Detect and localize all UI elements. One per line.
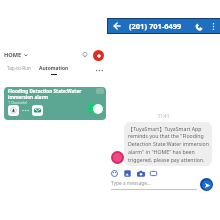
button[interactable]: Scenes bbox=[80, 50, 90, 60]
staticText: Tap-to-Run bbox=[7, 65, 31, 71]
button[interactable]: 【TuyaSmart】TuyaSmart App reminds you tha… bbox=[124, 122, 212, 166]
staticText: 1 Device(s) bbox=[8, 100, 27, 105]
button[interactable]: Type a message... bbox=[111, 180, 197, 190]
button[interactable]: HOME bbox=[4, 51, 28, 59]
staticText: 11:41 bbox=[107, 113, 220, 119]
staticText: (201) 701-6499 bbox=[129, 21, 182, 31]
button[interactable]: More bbox=[95, 66, 104, 75]
button[interactable]: More options bbox=[208, 21, 219, 32]
button[interactable]: Send bbox=[200, 178, 213, 191]
staticText: Type a message... bbox=[111, 180, 151, 187]
button[interactable]: Flooding Detection State:Water immersion… bbox=[4, 87, 106, 120]
button[interactable]: Gallery bbox=[122, 168, 133, 179]
button[interactable]: Tap-to-Run bbox=[7, 65, 31, 71]
button[interactable]: Call bbox=[192, 20, 205, 33]
staticText: Flooding Detection State:Water immersion… bbox=[8, 88, 82, 100]
button[interactable]: Emoji bbox=[109, 168, 120, 179]
button[interactable]: Add bbox=[93, 50, 104, 61]
button[interactable]: Enable automation bbox=[88, 103, 104, 114]
staticText: HOME bbox=[4, 51, 22, 59]
button[interactable]: Automation bbox=[39, 65, 69, 75]
staticText: Automation bbox=[39, 65, 69, 72]
button[interactable]: Camera bbox=[135, 168, 146, 179]
button[interactable]: Back bbox=[111, 20, 123, 32]
staticText: 【TuyaSmart】TuyaSmart App reminds you tha… bbox=[128, 125, 209, 163]
button[interactable]: More attachments bbox=[148, 168, 159, 179]
